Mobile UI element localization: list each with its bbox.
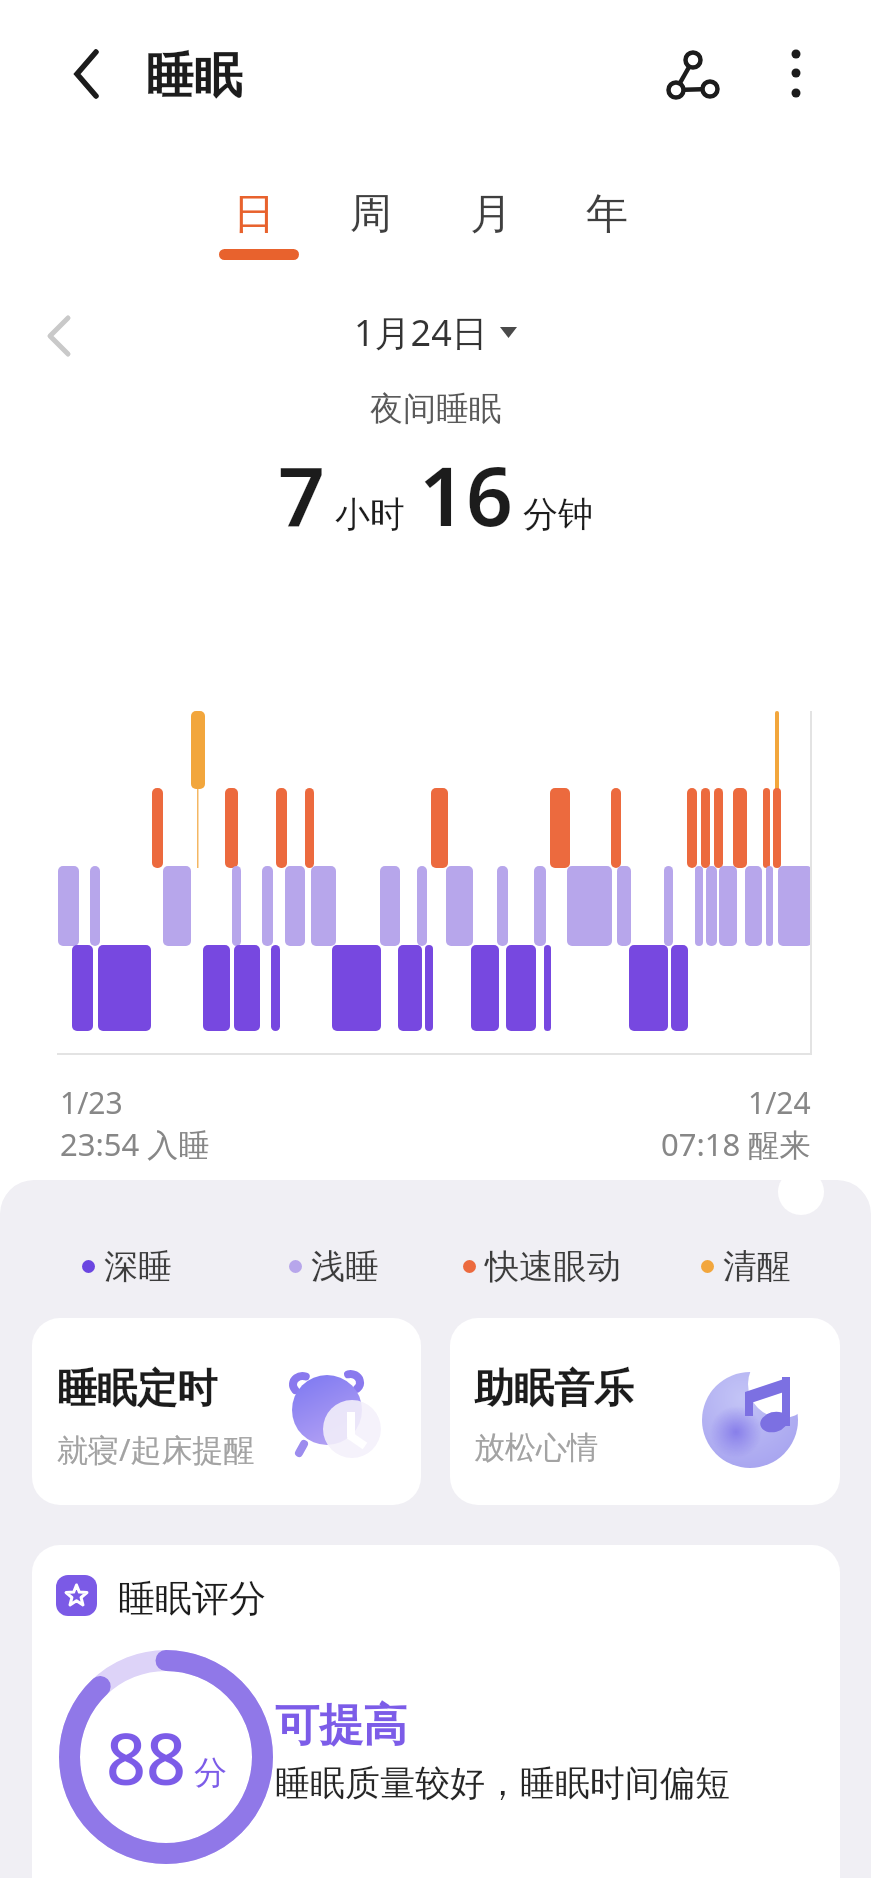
staticText: 浅睡	[311, 1245, 379, 1288]
staticText: 清醒	[723, 1245, 791, 1288]
staticText: 周	[350, 188, 392, 241]
staticText: 夜间睡眠	[370, 388, 502, 430]
button[interactable]: 月	[447, 186, 535, 242]
staticText: 睡眠评分	[118, 1575, 266, 1622]
staticText: 1/24	[748, 1082, 811, 1123]
staticText: 1/23	[60, 1082, 123, 1123]
staticText: 分	[194, 1752, 227, 1794]
button[interactable]	[34, 308, 82, 356]
staticText: 深睡	[104, 1245, 172, 1288]
staticText: 月	[470, 188, 512, 241]
staticText: 可提高	[275, 1698, 407, 1753]
staticText: 16	[419, 438, 513, 550]
staticText: 睡眠质量较好，睡眠时间偏短	[275, 1761, 730, 1805]
button[interactable]: 周	[327, 186, 415, 242]
staticText: 睡眠	[146, 46, 242, 106]
staticText: 23:54 入睡	[60, 1123, 210, 1165]
button[interactable]: 1月24日	[354, 308, 517, 357]
staticText: 快速眼动	[485, 1245, 621, 1288]
staticText: 日	[233, 188, 275, 241]
button[interactable]: 睡眠定时	[32, 1318, 421, 1505]
staticText: 1月24日	[354, 308, 488, 357]
button[interactable]	[655, 40, 731, 108]
staticText: 88	[106, 1710, 187, 1805]
button[interactable]: 睡眠评分	[32, 1545, 840, 1878]
staticText: 分钟	[523, 492, 593, 536]
staticText: 睡眠定时	[57, 1363, 217, 1413]
staticText: 放松心情	[474, 1428, 598, 1467]
button[interactable]	[58, 36, 114, 92]
staticText: 7	[278, 438, 325, 550]
staticText: 就寝/起床提醒	[57, 1428, 255, 1470]
staticText: 07:18 醒来	[661, 1123, 811, 1165]
button[interactable]: 年	[563, 186, 651, 242]
staticText: 年	[586, 188, 628, 241]
button[interactable]: 日	[210, 186, 298, 242]
staticText: 助眠音乐	[474, 1363, 634, 1413]
button[interactable]: 助眠音乐	[450, 1318, 840, 1505]
button[interactable]	[772, 36, 820, 108]
staticText: 小时	[335, 492, 405, 536]
